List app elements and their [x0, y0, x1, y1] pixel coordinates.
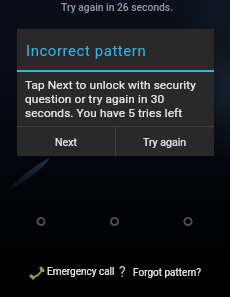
staticText: ? — [119, 264, 126, 280]
button[interactable]: Emergency call — [30, 265, 115, 279]
staticText: Next — [55, 136, 77, 148]
other: Emergency call — [30, 265, 44, 279]
staticText: Forgot pattern? — [133, 267, 202, 279]
staticText: Emergency call — [47, 266, 115, 278]
button[interactable]: Try again — [116, 127, 214, 156]
staticText: Try again — [143, 136, 187, 148]
staticText: Try again in 26 seconds. — [61, 1, 174, 13]
button[interactable]: ? — [119, 265, 202, 281]
button[interactable]: Next — [17, 127, 115, 156]
staticText: Tap Next to unlock with security questio… — [25, 78, 205, 120]
staticText: Incorrect pattern — [26, 42, 147, 60]
